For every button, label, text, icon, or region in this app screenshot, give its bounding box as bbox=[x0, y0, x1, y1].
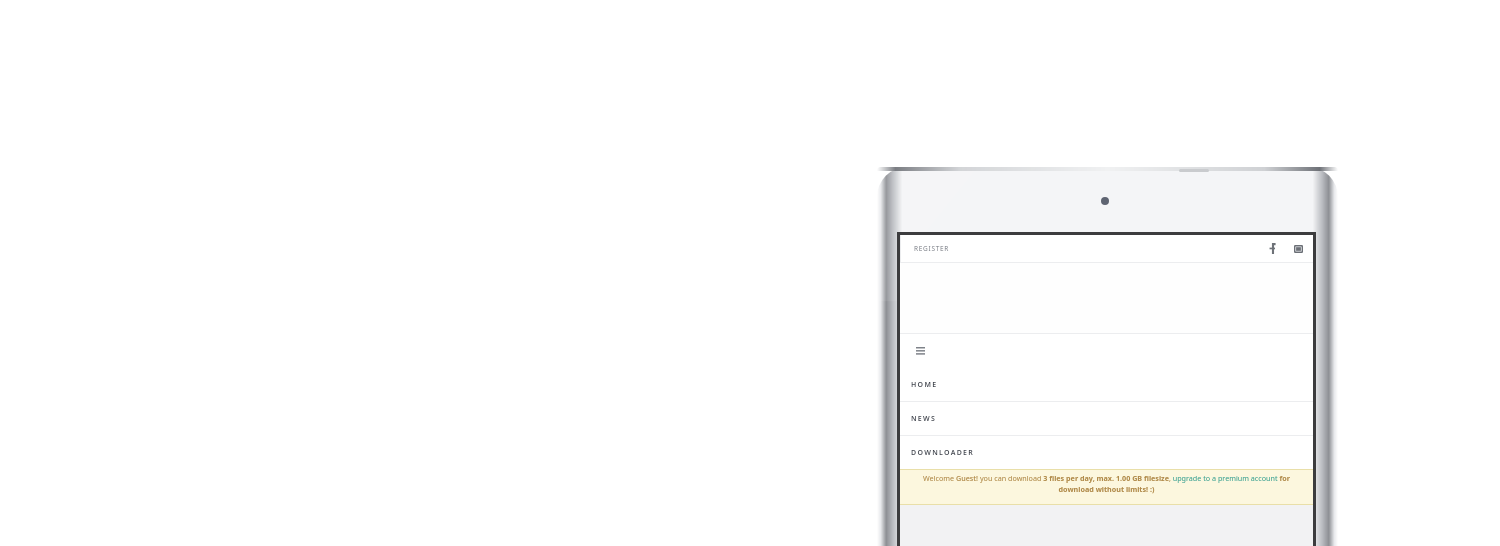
button[interactable]: Menu bbox=[909, 340, 931, 362]
staticText: NEWS bbox=[911, 414, 937, 424]
button[interactable]: HOME bbox=[900, 368, 1313, 401]
button[interactable]: DOWNLOADER bbox=[900, 436, 1313, 469]
staticText: HOME bbox=[911, 380, 938, 390]
button[interactable]: Facebook bbox=[1261, 235, 1283, 262]
button[interactable]: Contact bbox=[1283, 235, 1313, 262]
staticText: DOWNLOADER bbox=[911, 448, 975, 458]
staticText: REGISTER bbox=[914, 244, 950, 253]
button[interactable]: NEWS bbox=[900, 402, 1313, 435]
button[interactable]: REGISTER bbox=[901, 235, 963, 262]
staticText: Welcome Guest! you can download 3 files … bbox=[908, 473, 1305, 494]
